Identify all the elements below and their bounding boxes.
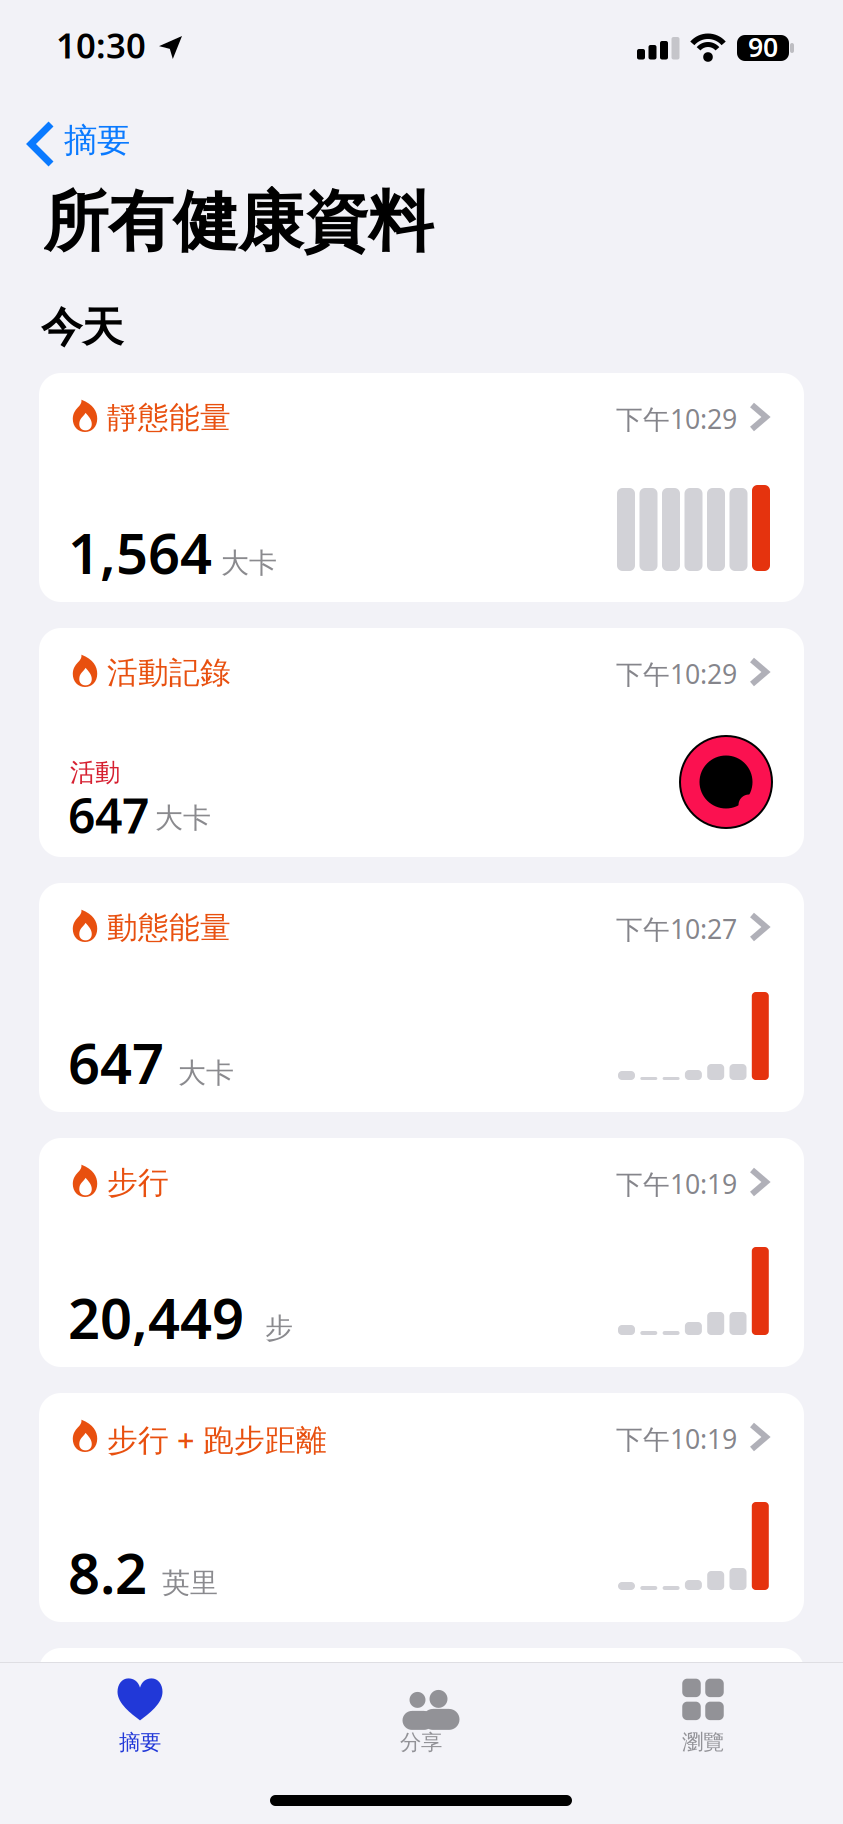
button[interactable]: 動態能量 <box>39 883 804 1112</box>
button[interactable]: 返回摘要 <box>0 108 150 172</box>
staticText: 90 <box>748 29 778 64</box>
staticText: 今天 <box>41 302 123 353</box>
staticText: 步行 <box>107 1164 169 1202</box>
staticText: 下午10:19 <box>616 1421 737 1456</box>
staticText: 下午10:29 <box>616 656 737 691</box>
staticText: 步 <box>265 1311 293 1345</box>
staticText: 8.2 <box>68 1535 147 1609</box>
staticText: 所有健康資料 <box>43 182 433 262</box>
staticText: 下午10:27 <box>616 911 737 946</box>
staticText: 活動記錄 <box>107 654 231 692</box>
staticText: 步行 + 跑步距離 <box>107 1419 327 1460</box>
staticText: 摘要 <box>64 120 130 161</box>
staticText: 下午10:19 <box>616 1166 737 1201</box>
staticText: 647 <box>68 1025 164 1099</box>
staticText: 20,449 <box>68 1280 244 1354</box>
button[interactable]: 步行 <box>39 1138 804 1367</box>
button[interactable]: 靜態能量 <box>39 373 804 602</box>
staticText: 大卡 <box>221 546 277 580</box>
staticText: 大卡 <box>178 1056 234 1090</box>
button[interactable]: 步行 + 跑步距離 <box>39 1393 804 1622</box>
staticText: 活動 <box>70 757 120 788</box>
staticText: 瀏覽 <box>682 1729 724 1755</box>
staticText: 摘要 <box>119 1729 161 1756</box>
staticText: 動態能量 <box>107 909 231 947</box>
button[interactable]: 分享 <box>331 1677 511 1757</box>
staticText: 10:30 <box>56 22 146 68</box>
staticText: 英里 <box>162 1566 218 1600</box>
staticText: 下午10:29 <box>616 401 737 436</box>
staticText: 分享 <box>400 1729 442 1756</box>
button[interactable]: 瀏覽 <box>613 1677 793 1757</box>
staticText: 647 <box>68 783 149 847</box>
staticText: 1,564 <box>68 515 212 589</box>
staticText: 靜態能量 <box>107 399 231 437</box>
staticText: 大卡 <box>155 801 211 835</box>
button[interactable]: 摘要 <box>50 1677 230 1757</box>
button[interactable]: 活動記錄 <box>39 628 804 857</box>
